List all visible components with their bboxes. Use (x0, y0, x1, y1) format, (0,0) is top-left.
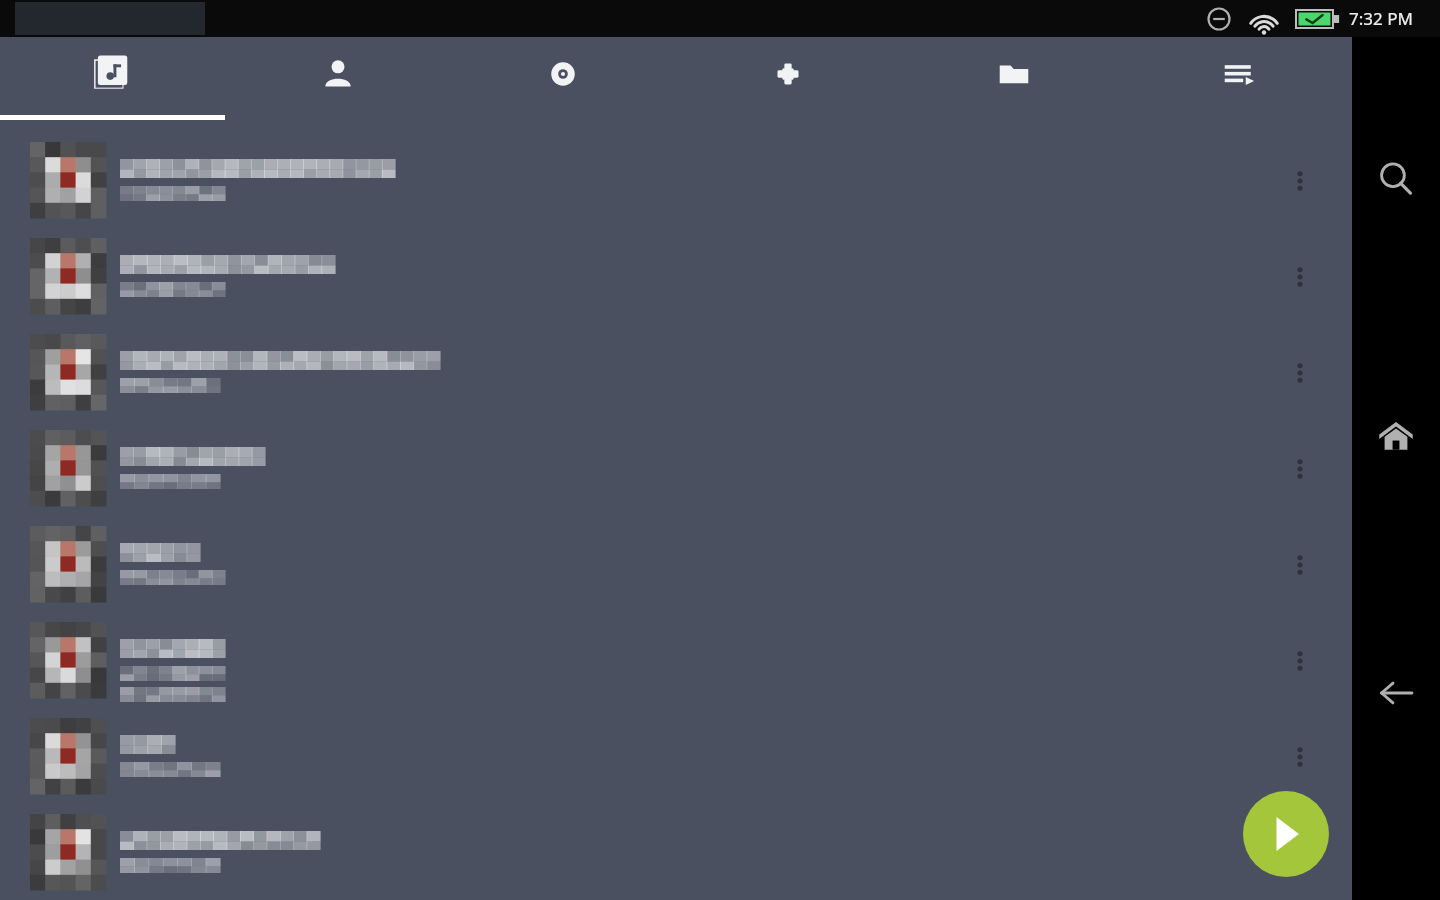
button[interactable]: Albums (0, 37, 225, 120)
button[interactable]: Play (1243, 791, 1329, 877)
button[interactable]: Songs (450, 37, 675, 120)
button[interactable]: More options (1272, 345, 1328, 401)
button[interactable]: Artists (225, 37, 450, 120)
button[interactable]: More options (1272, 633, 1328, 689)
button[interactable]: More options (0, 325, 1352, 421)
button[interactable]: More options (0, 229, 1352, 325)
button[interactable]: More options (1272, 825, 1328, 881)
button[interactable]: More options (0, 517, 1352, 613)
button[interactable]: Playlists (1126, 37, 1351, 120)
button[interactable]: More options (0, 421, 1352, 517)
button[interactable]: Home (1374, 414, 1418, 458)
button[interactable]: More options (0, 805, 1352, 900)
button[interactable]: More options (0, 613, 1352, 709)
button[interactable]: Back (1374, 671, 1418, 715)
button[interactable]: Search (1374, 157, 1418, 201)
button[interactable]: More options (0, 133, 1352, 229)
button[interactable]: More options (1272, 249, 1328, 305)
button[interactable]: Genres (675, 37, 900, 120)
button[interactable]: More options (0, 709, 1352, 805)
button[interactable]: More options (1272, 729, 1328, 785)
button[interactable]: Folders (901, 37, 1126, 120)
button[interactable]: More options (1272, 537, 1328, 593)
button[interactable]: More options (1272, 153, 1328, 209)
button[interactable]: More options (1272, 441, 1328, 497)
staticText: 7:32 PM (1349, 7, 1413, 30)
